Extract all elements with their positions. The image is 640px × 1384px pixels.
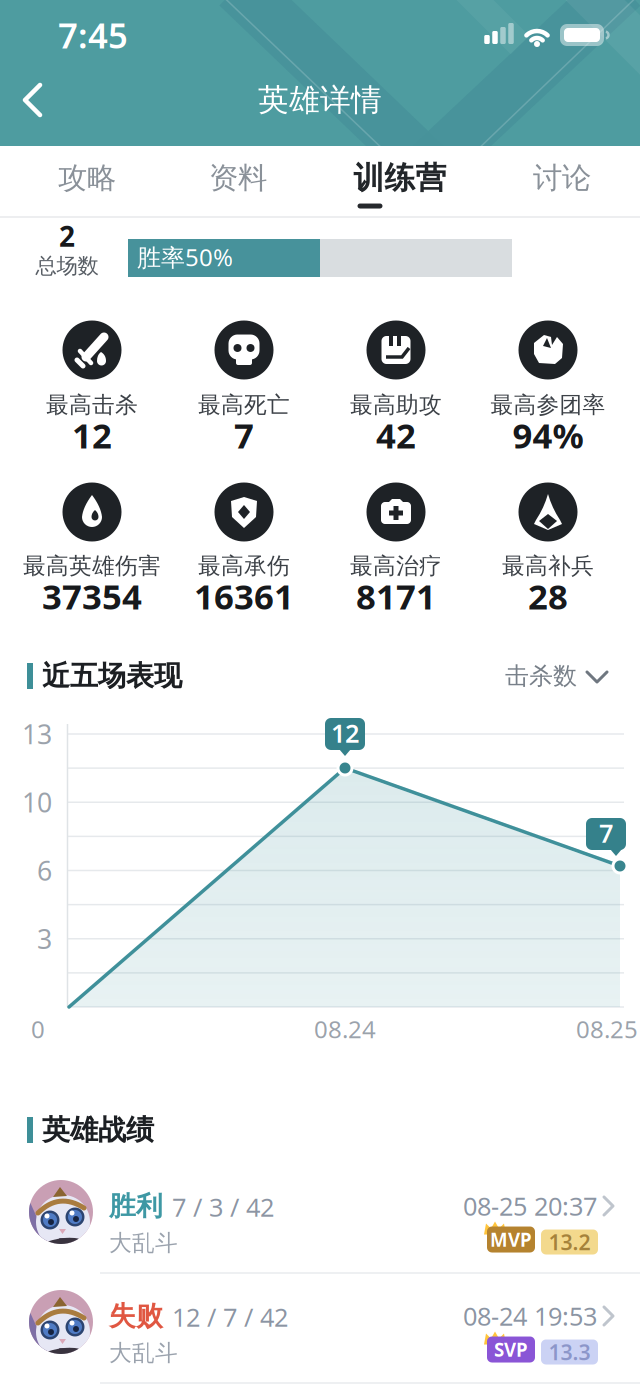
staticText: 失败: [109, 1300, 163, 1332]
button[interactable]: 失败: [0, 1267, 640, 1383]
staticText: 总场数: [35, 253, 98, 279]
staticText: 13: [22, 716, 52, 752]
button[interactable]: Back: [6, 72, 62, 128]
staticText: 3: [37, 921, 52, 956]
staticText: 10: [22, 784, 52, 820]
staticText: 12 / 7 / 42: [172, 1300, 288, 1334]
staticText: 最高英雄伤害: [23, 552, 161, 580]
staticText: 7 / 3 / 42: [172, 1190, 274, 1224]
staticText: 胜率50%: [137, 241, 233, 273]
staticText: 42: [376, 412, 416, 458]
button[interactable]: 资料: [173, 147, 303, 209]
staticText: 7:45: [58, 12, 128, 58]
staticText: 击杀数: [505, 661, 577, 691]
staticText: 7: [234, 412, 254, 458]
staticText: 13.2: [548, 1228, 590, 1256]
staticText: 攻略: [58, 160, 116, 196]
staticText: 94%: [512, 412, 583, 458]
staticText: 最高治疗: [350, 552, 442, 580]
staticText: 08-24 19:53: [463, 1299, 597, 1333]
staticText: 37354: [42, 573, 142, 619]
staticText: 0: [31, 1013, 45, 1045]
staticText: 近五场表现: [42, 659, 182, 693]
staticText: 英雄战绩: [42, 1113, 154, 1147]
staticText: 7: [599, 816, 613, 850]
staticText: 12: [72, 412, 112, 458]
staticText: 最高参团率: [490, 391, 605, 419]
staticText: 最高助攻: [350, 391, 442, 419]
button[interactable]: 胜利: [0, 1157, 640, 1273]
button[interactable]: 训练营: [327, 147, 472, 209]
button[interactable]: 讨论: [497, 147, 627, 209]
staticText: 08.25: [576, 1013, 638, 1045]
staticText: 08-25 20:37: [463, 1189, 597, 1223]
staticText: 大乱斗: [109, 1229, 178, 1257]
staticText: 12: [331, 716, 359, 750]
staticText: MVP: [490, 1227, 532, 1252]
staticText: 最高击杀: [46, 391, 138, 419]
staticText: 08.24: [314, 1013, 376, 1045]
staticText: 28: [528, 573, 568, 619]
staticText: 英雄详情: [258, 81, 382, 119]
staticText: 大乱斗: [109, 1339, 178, 1367]
button[interactable]: 攻略: [22, 147, 152, 209]
staticText: SVP: [494, 1337, 528, 1362]
staticText: 资料: [209, 160, 267, 196]
staticText: 最高补兵: [502, 552, 594, 580]
button[interactable]: 击杀数: [495, 651, 625, 701]
staticText: 6: [37, 853, 52, 888]
staticText: 13.3: [548, 1338, 590, 1366]
staticText: 训练营: [353, 159, 446, 197]
staticText: 讨论: [533, 160, 591, 196]
staticText: 2: [59, 217, 75, 255]
staticText: 最高死亡: [198, 391, 290, 419]
staticText: 胜利: [109, 1190, 163, 1222]
staticText: 8171: [356, 573, 436, 619]
staticText: 16361: [194, 573, 294, 619]
staticText: 最高承伤: [198, 552, 290, 580]
